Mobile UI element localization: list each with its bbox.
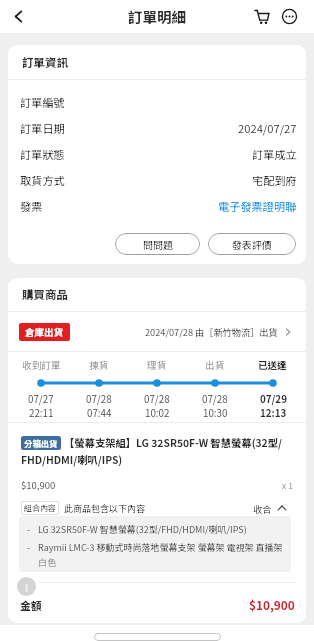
button[interactable]: 組合內容 [21,501,293,515]
staticText: 訂單狀態 [20,146,65,162]
staticText: LG 32SR50F-W 智慧螢幕(32型/FHD/HDMI/喇叭/IPS) [38,523,247,536]
staticText: 購買商品 [22,286,68,303]
staticText: i [25,579,29,595]
staticText: 【螢幕支架組】LG 32SR50F-W 智慧螢幕(32型/ [64,435,282,450]
staticText: 12:13 [260,406,287,420]
staticText: 訂單成立 [252,146,297,162]
staticText: 宅配到府 [252,172,297,188]
staticText: - [27,523,38,536]
staticText: 07/29 [260,392,287,406]
staticText: 訂單明細 [128,6,186,27]
staticText: FHD/HDMI/喇叭/IPS) [21,452,123,467]
button[interactable]: 倉庫出貨 [8,312,306,351]
staticText: 已送達 [258,358,288,372]
staticText: 組合內容 [24,502,56,514]
staticText: 2024/07/27 [238,120,297,136]
button[interactable]: 問問題 [115,233,200,255]
staticText: $10,900 [249,596,295,613]
button[interactable]: 發表評價 [208,233,296,255]
staticText: 揀貨 [89,358,109,372]
staticText: 出貨 [205,358,225,372]
staticText: 金額 [20,597,42,613]
staticText: 電子發票證明聯 [218,198,297,214]
staticText: 22:11 [29,406,54,420]
staticText: 10:02 [145,406,170,420]
staticText: 此商品包含以下內容 [64,502,146,515]
staticText: Raymii LMC-3 移動式時尚落地螢幕支架 螢幕架 電視架 直播架 [38,541,283,554]
staticText: 發票 [20,198,43,214]
staticText: 問問題 [143,237,173,251]
staticText: 07:44 [87,406,112,420]
staticText: - [27,541,38,554]
button[interactable]: Shopping cart [248,0,275,33]
staticText: $10,900 [21,478,56,492]
staticText: 理貨 [147,358,167,372]
staticText: 07/27 [28,392,54,406]
staticText: 發表評價 [232,237,272,251]
staticText: 07/28 [144,392,170,406]
staticText: 分箱出貨 [24,437,58,449]
button[interactable] [94,633,221,641]
staticText: 收到訂單 [22,358,61,372]
button[interactable]: More options [276,0,303,33]
staticText: 訂單資訊 [22,54,68,71]
staticText: 訂單編號 [20,94,65,110]
staticText: 10:30 [203,406,228,420]
staticText: 07/28 [86,392,112,406]
staticText: 白色 [38,555,57,568]
staticText: x 1 [282,479,293,491]
staticText: 2024/07/28 由［新竹物流］出貨 [145,325,278,338]
staticText: 07/28 [202,392,228,406]
staticText: 取貨方式 [20,172,65,188]
staticText: 訂單日期 [20,120,65,136]
button[interactable]: Information [17,577,36,596]
staticText: 倉庫出貨 [25,325,64,339]
button[interactable]: Back [0,0,36,33]
staticText: 收合 [253,502,272,515]
